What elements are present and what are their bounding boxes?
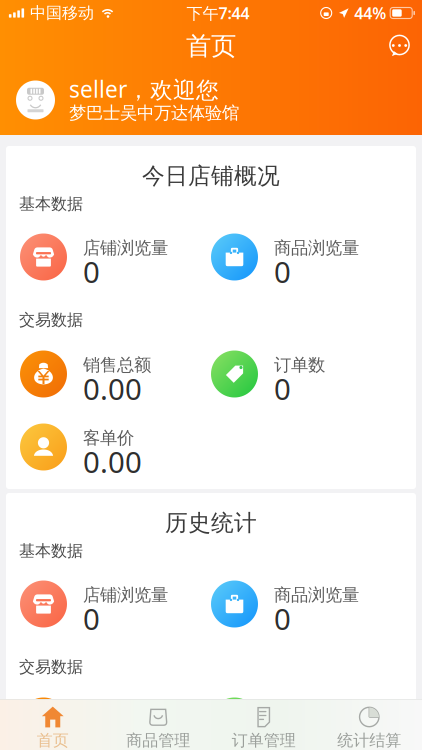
staticText: 统计结算 (337, 731, 401, 750)
staticText: 销售总额 (83, 354, 151, 376)
staticText: 商品浏览量 (274, 237, 359, 259)
button[interactable]: 商品管理 (105, 696, 211, 750)
staticText: 交易数据 (19, 657, 83, 677)
staticText: 店铺浏览量 (83, 584, 168, 606)
button[interactable]: 首页 (0, 696, 105, 750)
staticText: 下午7:44 (187, 2, 250, 24)
staticText: 首页 (37, 731, 69, 750)
staticText: 交易数据 (19, 310, 83, 330)
button[interactable]: 订单管理 (211, 696, 316, 750)
staticText: 客单价 (83, 427, 134, 449)
button[interactable]: Messages (377, 28, 422, 63)
staticText: seller，欢迎您 (69, 74, 219, 104)
staticText: 商品管理 (126, 731, 190, 750)
staticText: 0 (274, 716, 291, 750)
staticText: 中国移动 (30, 3, 94, 23)
staticText: 0.00 (83, 369, 142, 408)
staticText: 0 (274, 252, 291, 291)
staticText: 0.00 (83, 716, 142, 750)
staticText: 历史统计 (165, 509, 257, 533)
staticText: 首页 (186, 30, 236, 61)
staticText: 商品浏览量 (274, 584, 359, 606)
staticText: 0 (274, 599, 291, 638)
staticText: 订单数 (274, 354, 325, 376)
button[interactable]: 统计结算 (316, 696, 422, 750)
staticText: 0 (274, 369, 291, 408)
staticText: 今日店铺概况 (142, 162, 280, 186)
staticText: 销售总额 (83, 701, 151, 723)
staticText: 0 (83, 599, 100, 638)
staticText: 店铺浏览量 (83, 237, 168, 259)
staticText: 基本数据 (19, 541, 83, 561)
staticText: 0 (83, 252, 100, 291)
staticText: 0.00 (83, 442, 142, 481)
staticText: 44% (354, 2, 386, 24)
staticText: 梦巴士吴中万达体验馆 (69, 102, 239, 124)
staticText: 订单管理 (232, 731, 296, 750)
staticText: 基本数据 (19, 194, 83, 214)
